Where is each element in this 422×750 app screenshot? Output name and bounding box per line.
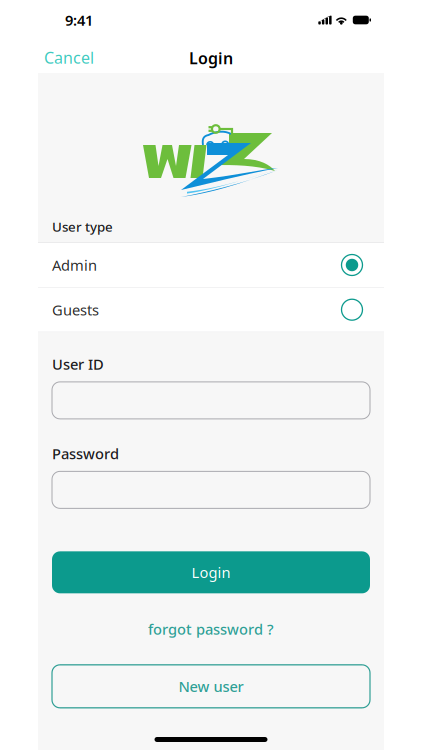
staticText: User type <box>52 218 113 235</box>
staticText: Login <box>189 47 233 69</box>
staticText: forgot password ? <box>148 619 274 639</box>
staticText: Guests <box>52 300 99 319</box>
staticText: Password <box>52 444 119 463</box>
staticText: Admin <box>52 255 97 275</box>
button[interactable]: Login <box>52 551 370 593</box>
button[interactable]: Admin <box>38 243 384 287</box>
staticText: Cancel <box>44 47 94 68</box>
button[interactable]: Cancel <box>36 40 102 73</box>
staticText: 9:41 <box>65 10 93 30</box>
button[interactable]: New user <box>52 665 370 708</box>
staticText: New user <box>178 677 243 696</box>
button[interactable]: Guests <box>38 288 384 332</box>
staticText: User ID <box>52 354 104 374</box>
button[interactable]: forgot password ? <box>52 612 370 646</box>
staticText: Login <box>191 563 230 582</box>
